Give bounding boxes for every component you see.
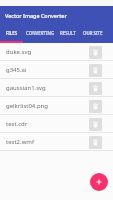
staticText: gaussian1.svg (6, 84, 46, 92)
button[interactable]: Delete (89, 100, 102, 113)
staticText: duke.svg (6, 48, 32, 56)
button[interactable]: Delete (89, 82, 102, 95)
staticText: FILES (6, 30, 18, 36)
button[interactable]: duke.svg (0, 43, 113, 61)
button[interactable]: RESULT (57, 26, 78, 43)
staticText: CONVERTING (26, 30, 55, 36)
button[interactable]: Delete (89, 64, 102, 77)
button[interactable]: Delete (89, 46, 102, 59)
staticText: test.cdr (6, 120, 28, 128)
button[interactable]: Add file (90, 173, 108, 191)
button[interactable]: Delete (89, 118, 102, 131)
button[interactable]: FILES (0, 26, 23, 43)
button[interactable]: test2.wmf (0, 133, 113, 151)
staticText: g345.ai (6, 66, 27, 74)
button[interactable]: g345.ai (0, 61, 113, 79)
staticText: gelkrlist04.png (6, 102, 49, 110)
button[interactable]: OUR SITE (78, 26, 108, 43)
button[interactable]: gaussian1.svg (0, 79, 113, 97)
button[interactable]: gelkrlist04.png (0, 97, 113, 115)
button[interactable]: test.cdr (0, 115, 113, 133)
staticText: Vector Image Converter (5, 12, 67, 19)
button[interactable]: CONVERTING (23, 26, 57, 43)
staticText: test2.wmf (6, 138, 35, 146)
button[interactable]: Delete (89, 136, 102, 149)
staticText: RESULT (60, 30, 76, 36)
staticText: OUR SITE (83, 30, 103, 36)
